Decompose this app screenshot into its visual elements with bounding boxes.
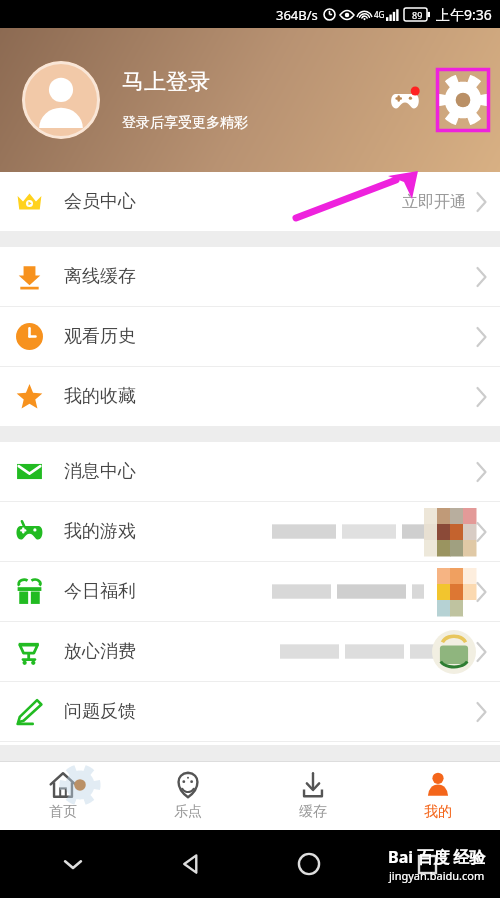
staticText: 89 — [412, 9, 423, 21]
button[interactable]: 我的收藏 — [0, 367, 500, 426]
staticText: 会员中心 — [64, 190, 136, 213]
button[interactable]: 放心消费 — [0, 622, 500, 681]
button[interactable]: 乐点 — [125, 762, 250, 830]
button[interactable]: 消息中心 — [0, 442, 500, 501]
staticText: 立即开通 — [402, 192, 466, 212]
button[interactable]: 我的游戏 — [0, 502, 500, 561]
staticText: 马上登录 — [122, 68, 210, 96]
staticText: 我的游戏 — [64, 520, 136, 543]
staticText: 缓存 — [299, 803, 327, 821]
staticText: 我的收藏 — [64, 385, 136, 408]
staticText: 4G — [374, 9, 385, 20]
button[interactable]: 首页 — [0, 762, 125, 830]
button[interactable]: Games — [382, 77, 428, 123]
button[interactable]: 离线缓存 — [0, 247, 500, 306]
button[interactable]: 今日福利 — [0, 562, 500, 621]
staticText: 放心消费 — [64, 640, 136, 663]
staticText: 消息中心 — [64, 460, 136, 483]
staticText: jingyan.baidu.com — [389, 868, 485, 883]
button[interactable]: 会员中心 — [0, 172, 500, 231]
staticText: 上午9:36 — [436, 5, 492, 24]
staticText: 登录后享受更多精彩 — [122, 114, 248, 132]
staticText: 我的 — [424, 803, 452, 821]
button[interactable]: 缓存 — [250, 762, 375, 830]
staticText: 问题反馈 — [64, 700, 136, 723]
button[interactable]: 问题反馈 — [0, 682, 500, 741]
staticText: Bai 百度 经验 — [388, 846, 486, 868]
staticText: 今日福利 — [64, 580, 136, 603]
button[interactable]: 观看历史 — [0, 307, 500, 366]
button[interactable]: Settings — [436, 68, 490, 132]
staticText: 364B/s — [276, 6, 318, 24]
button[interactable]: 我的 — [375, 762, 500, 830]
staticText: 首页 — [49, 803, 77, 821]
staticText: 离线缓存 — [64, 265, 136, 288]
staticText: 乐点 — [174, 803, 202, 821]
staticText: 观看历史 — [64, 325, 136, 348]
